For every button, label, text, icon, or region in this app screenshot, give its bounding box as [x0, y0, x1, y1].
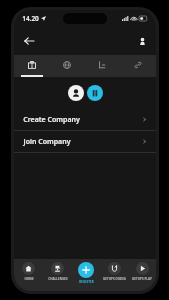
button[interactable]: REGISTER — [72, 262, 100, 291]
button[interactable]: Personal profile — [68, 85, 84, 101]
staticText: REGISTER — [79, 280, 94, 284]
button[interactable]: HOME — [14, 262, 43, 291]
button[interactable]: Profile — [134, 33, 150, 49]
button[interactable]: Global — [49, 55, 84, 75]
button[interactable]: GETUPS PLAY — [128, 262, 156, 291]
staticText: GETUPS DOING — [103, 277, 126, 281]
button[interactable]: Create Company — [14, 109, 156, 130]
button[interactable]: GETUPS DOING — [100, 262, 128, 291]
button[interactable]: CHALLENGES — [43, 262, 72, 291]
button[interactable]: Back — [20, 32, 38, 50]
staticText: 14.20 — [22, 14, 39, 23]
staticText: CHALLENGES — [48, 277, 68, 281]
staticText: GETUPS PLAY — [132, 277, 152, 281]
staticText: Join Company — [23, 137, 71, 147]
staticText: Create Company — [23, 115, 80, 125]
button[interactable]: Join Company — [14, 131, 156, 152]
staticText: HOME — [24, 277, 34, 281]
button[interactable]: Stats — [84, 55, 120, 75]
button[interactable]: Company profile — [87, 85, 103, 101]
button[interactable]: Links — [120, 55, 156, 75]
button[interactable]: Company — [14, 55, 49, 75]
